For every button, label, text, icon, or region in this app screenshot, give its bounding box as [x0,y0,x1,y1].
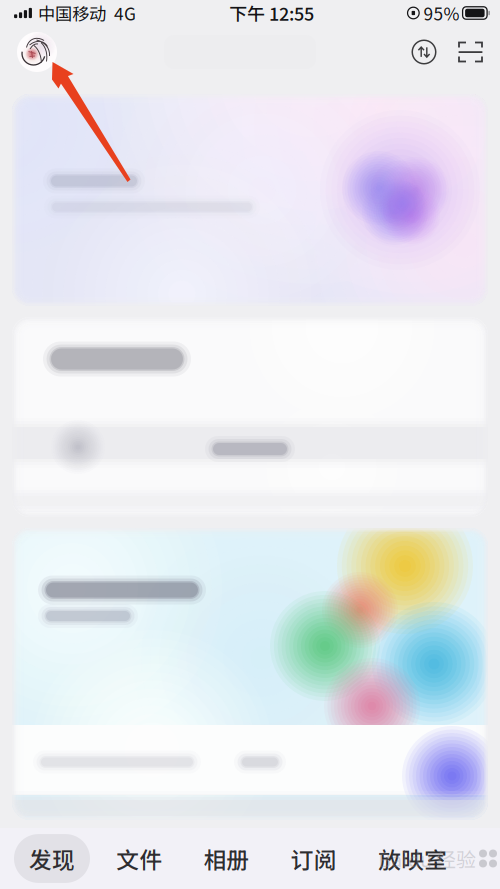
button[interactable]: 发现 [14,834,90,883]
button[interactable]: 个人中心 [0,32,69,72]
staticText: 文件 [116,842,162,875]
staticText: 发现 [29,842,75,875]
staticText: 4G [114,0,136,26]
button[interactable]: 放映室 [363,834,462,883]
staticText: 下午 12:55 [229,0,314,26]
staticText: Baidu 经验 [378,844,476,873]
staticText: 95% [424,0,460,26]
staticText: 相册 [203,842,249,875]
staticText: 放映室 [378,842,447,875]
button[interactable]: 传输列表 [411,39,437,65]
staticText: 中国移动 [38,0,106,26]
button[interactable]: 相册 [188,834,264,883]
button[interactable]: 文件 [101,834,177,883]
staticText: 订阅 [291,842,337,875]
button[interactable]: 扫一扫 [458,39,483,64]
button[interactable]: 订阅 [276,834,352,883]
